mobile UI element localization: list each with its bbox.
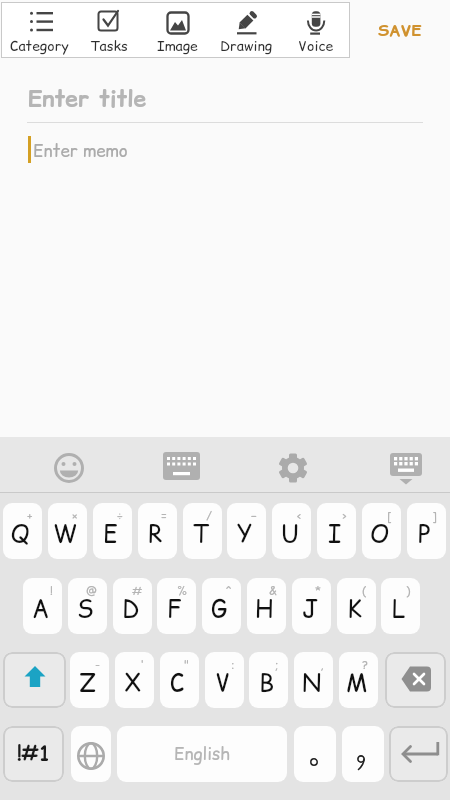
staticText: K xyxy=(347,592,362,625)
staticText: Voice xyxy=(298,36,334,56)
staticText: % xyxy=(177,582,187,599)
staticText: ! xyxy=(50,582,53,599)
button[interactable]: R xyxy=(138,503,177,559)
staticText: − xyxy=(251,507,257,524)
staticText: F xyxy=(167,592,182,625)
staticText: Tasks xyxy=(90,36,128,56)
staticText: B xyxy=(259,666,275,699)
staticText: O xyxy=(370,517,390,550)
button[interactable]: Y xyxy=(227,503,266,559)
staticText: Z xyxy=(79,666,96,699)
button[interactable]: J xyxy=(292,578,331,634)
button[interactable]: V xyxy=(205,652,244,708)
staticText: Category xyxy=(10,36,69,56)
button[interactable]: Q xyxy=(3,503,42,559)
staticText: & xyxy=(269,582,277,599)
staticText: Enter title xyxy=(28,83,147,115)
button[interactable]: Drawing xyxy=(212,2,281,58)
button[interactable]: I xyxy=(317,503,356,559)
button[interactable]: Image xyxy=(143,2,212,58)
staticText: Enter memo xyxy=(33,139,128,163)
button[interactable] xyxy=(384,449,428,483)
staticText: @ xyxy=(86,582,98,599)
button[interactable] xyxy=(159,448,203,482)
button[interactable]: M xyxy=(339,652,378,708)
staticText: English xyxy=(174,742,231,766)
staticText: W xyxy=(53,517,78,550)
button[interactable]: C xyxy=(160,652,199,708)
button[interactable]: K xyxy=(337,578,376,634)
staticText: N xyxy=(302,666,322,699)
staticText: I xyxy=(328,517,342,550)
button[interactable]: U xyxy=(272,503,311,559)
staticText: L xyxy=(392,592,406,625)
button[interactable]: Tasks xyxy=(74,2,143,58)
staticText: " xyxy=(184,656,190,673)
button[interactable]: SAVE xyxy=(358,2,442,58)
staticText: > xyxy=(342,507,347,524)
staticText: , xyxy=(320,656,324,673)
button[interactable]: !#1 xyxy=(3,726,64,782)
staticText: + xyxy=(27,507,33,524)
button[interactable] xyxy=(385,652,446,708)
button[interactable]: X xyxy=(115,652,154,708)
button[interactable]: Voice xyxy=(281,2,350,58)
staticText: H xyxy=(255,592,274,625)
button[interactable]: E xyxy=(93,503,132,559)
staticText: [ xyxy=(387,507,392,524)
button[interactable] xyxy=(71,726,111,782)
staticText: ; xyxy=(275,656,279,673)
button[interactable]: S xyxy=(68,578,107,634)
staticText: < xyxy=(297,507,302,524)
staticText: ÷ xyxy=(117,507,123,524)
staticText: D xyxy=(122,592,140,625)
staticText: ] xyxy=(432,507,437,524)
button[interactable]: T xyxy=(183,503,222,559)
staticText: * xyxy=(315,582,322,599)
button[interactable]: Category xyxy=(5,2,74,58)
staticText: Image xyxy=(157,36,198,56)
staticText: = xyxy=(161,507,168,524)
staticText: ' xyxy=(140,656,145,673)
button[interactable] xyxy=(271,451,315,485)
button[interactable]: Z xyxy=(70,652,109,708)
staticText: R xyxy=(148,517,164,550)
button[interactable]: F xyxy=(157,578,196,634)
staticText: G xyxy=(211,592,228,625)
staticText: ) xyxy=(406,582,411,599)
button[interactable]: P xyxy=(407,503,446,559)
button[interactable]: N xyxy=(294,652,333,708)
button[interactable]: H xyxy=(247,578,286,634)
staticText: S xyxy=(77,592,94,625)
button[interactable]: O xyxy=(362,503,401,559)
button[interactable] xyxy=(389,726,448,782)
staticText: !#1 xyxy=(17,740,51,768)
button[interactable]: W xyxy=(48,503,87,559)
button[interactable]: G xyxy=(202,578,241,634)
staticText: C xyxy=(170,666,185,699)
staticText: V xyxy=(215,666,231,699)
staticText: SAVE xyxy=(378,19,422,41)
button[interactable]: L xyxy=(381,578,420,634)
staticText: - xyxy=(95,656,100,673)
staticText: E xyxy=(103,517,118,550)
staticText: P xyxy=(418,517,431,550)
staticText: × xyxy=(72,507,78,524)
staticText: # xyxy=(132,582,143,599)
button[interactable]: D xyxy=(113,578,152,634)
staticText: : xyxy=(231,656,235,673)
button[interactable] xyxy=(342,726,384,782)
staticText: ^ xyxy=(225,582,232,599)
staticText: M xyxy=(346,666,368,699)
button[interactable] xyxy=(47,451,91,485)
button[interactable] xyxy=(294,726,336,782)
staticText: / xyxy=(206,507,213,524)
staticText: Y xyxy=(237,517,253,550)
staticText: Q xyxy=(10,517,32,550)
staticText: Drawing xyxy=(220,36,273,56)
button[interactable]: English xyxy=(117,726,287,782)
button[interactable] xyxy=(3,652,66,708)
button[interactable]: A xyxy=(23,578,62,634)
button[interactable]: B xyxy=(249,652,288,708)
staticText: A xyxy=(32,592,50,625)
